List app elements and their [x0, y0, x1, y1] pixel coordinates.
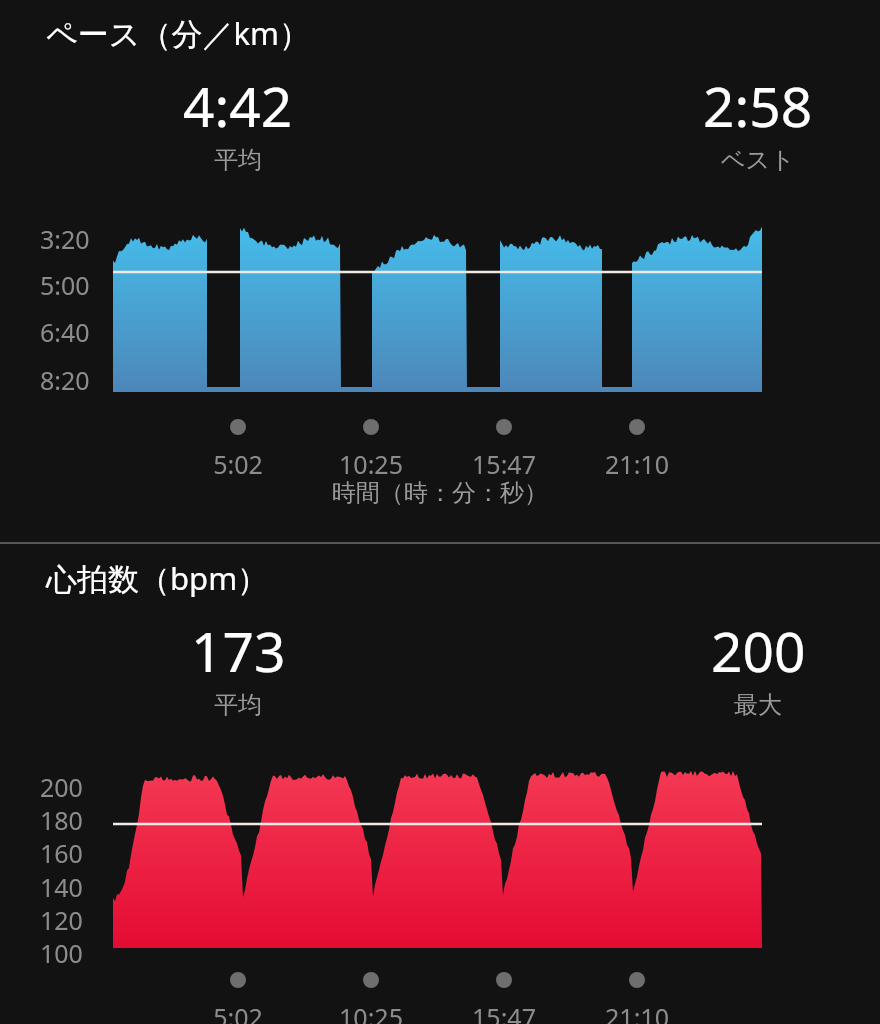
staticText: 15:47 — [454, 1000, 554, 1024]
staticText: 140 — [40, 870, 83, 904]
button[interactable]: 4:42 — [118, 68, 358, 173]
staticText: 3:20 — [40, 222, 90, 256]
staticText: 120 — [40, 903, 83, 937]
staticText: 2:58 — [703, 68, 813, 143]
staticText: 160 — [40, 836, 83, 870]
button[interactable]: 200 — [638, 613, 878, 718]
button[interactable]: 21:10 — [587, 1000, 687, 1024]
staticText: 8:20 — [40, 363, 90, 397]
staticText: 時間（時：分：秒） — [0, 478, 880, 508]
button[interactable]: 2:58 — [638, 68, 878, 173]
staticText: 173 — [191, 613, 286, 688]
staticText: 4:42 — [183, 68, 293, 143]
staticText: ベスト — [721, 145, 795, 175]
staticText: 6:40 — [40, 315, 90, 349]
button[interactable]: 21:10 — [587, 447, 687, 481]
staticText: 平均 — [214, 690, 262, 720]
staticText: 10:25 — [321, 1000, 421, 1024]
staticText: 15:47 — [454, 447, 554, 481]
staticText: 5:02 — [188, 1000, 288, 1024]
button[interactable]: 15:47 — [454, 447, 554, 481]
button[interactable]: 10:25 — [321, 447, 421, 481]
button[interactable]: 173 — [118, 613, 358, 718]
staticText: 最大 — [734, 690, 782, 720]
staticText: 200 — [40, 770, 83, 804]
button[interactable]: 5:02 — [188, 447, 288, 481]
button[interactable]: ペース（分／km） — [46, 12, 310, 54]
button[interactable]: 心拍数（bpm） — [46, 557, 269, 599]
button[interactable]: 5:02 — [188, 1000, 288, 1024]
staticText: 100 — [40, 936, 83, 970]
staticText: 21:10 — [587, 447, 687, 481]
staticText: 5:00 — [40, 268, 90, 302]
staticText: 21:10 — [587, 1000, 687, 1024]
staticText: 5:02 — [188, 447, 288, 481]
staticText: 200 — [711, 613, 806, 688]
staticText: 180 — [40, 803, 83, 837]
staticText: 平均 — [214, 145, 262, 175]
button[interactable]: 10:25 — [321, 1000, 421, 1024]
button[interactable]: 15:47 — [454, 1000, 554, 1024]
staticText: 10:25 — [321, 447, 421, 481]
